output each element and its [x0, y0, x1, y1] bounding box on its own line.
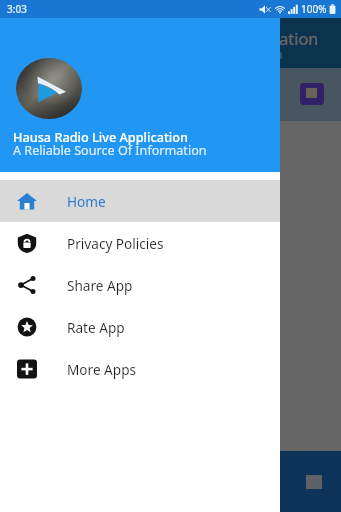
staticText: A Reliable Source Of Information	[98, 46, 283, 62]
button[interactable]: Rate App	[0, 306, 280, 348]
button[interactable]: Share App	[0, 264, 280, 306]
button[interactable]: More Apps	[0, 348, 280, 390]
staticText: 100%	[301, 2, 327, 16]
staticText: Hausa Radio Live Application	[13, 128, 188, 145]
button[interactable]: Privacy Policies	[0, 222, 280, 264]
staticText: Home	[67, 192, 106, 211]
staticText: Share App	[67, 276, 133, 295]
staticText: 3:03	[7, 2, 27, 16]
other: Home	[17, 191, 37, 211]
staticText: Rate App	[67, 318, 125, 337]
other: Share App	[17, 275, 37, 295]
staticText: Privacy Policies	[67, 234, 164, 253]
staticText: More Apps	[67, 360, 137, 379]
button[interactable]: Stop	[300, 83, 324, 105]
staticText: A Reliable Source Of Information	[13, 142, 207, 159]
button[interactable]: Home	[0, 180, 280, 222]
staticText: Hausa Radio Live Application	[98, 28, 319, 50]
